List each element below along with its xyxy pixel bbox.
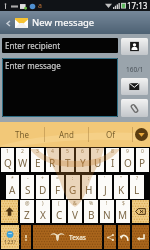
staticText: X [40,208,46,222]
staticText: New message [32,16,95,29]
staticText: 2 [21,148,24,155]
button[interactable]: : [66,175,80,199]
staticText: Enter recipient [5,40,61,51]
staticText: * [11,175,14,182]
button[interactable]: Backspace [132,200,149,223]
button[interactable]: 7 [91,148,104,172]
staticText: Of [106,129,115,140]
button[interactable]: ; [82,175,96,199]
button[interactable]: 3 [31,148,44,172]
staticText: 6 [81,148,84,155]
button[interactable]: And [45,122,88,147]
staticText: ! [106,200,108,207]
button[interactable]: % [84,200,98,223]
button[interactable]: Share [104,225,116,249]
button[interactable]: 8 [106,148,119,172]
button[interactable]: 4 [46,148,59,172]
button[interactable]: Enter message [2,58,118,117]
button[interactable]: Back [2,13,15,33]
staticText: S [25,183,31,197]
staticText: : [72,175,74,182]
staticText: - [27,175,29,182]
button[interactable]: Numbers and symbols [1,225,19,249]
staticText: 8 [111,148,114,155]
button[interactable]: Send [121,78,148,95]
button[interactable]: Shift [1,200,18,223]
button[interactable]: Enter recipient [2,38,118,53]
button[interactable]: The [0,122,44,147]
button[interactable]: $ [116,200,130,223]
staticText: 9 [126,148,129,155]
staticText: N [103,208,111,222]
staticText: H [85,183,93,197]
staticText: % [89,200,94,207]
button[interactable]: 9 [121,148,134,172]
staticText: I [111,156,115,170]
button[interactable]: ? [130,175,144,199]
staticText: K [118,183,125,197]
staticText: E [35,156,41,170]
button[interactable]: ( [52,200,66,223]
button[interactable]: 0 [136,148,149,172]
staticText: ? [136,175,139,182]
button[interactable]: 6 [76,148,89,172]
staticText: + [41,175,44,182]
staticText: L [134,183,140,197]
staticText: Q [4,156,12,170]
staticText: 160/1 [126,65,144,74]
staticText: O [124,156,132,170]
staticText: Z [24,208,30,222]
button[interactable]: & [68,200,82,223]
button[interactable]: * [6,175,19,199]
staticText: " [120,175,123,182]
button[interactable]: ) [36,200,50,223]
button[interactable]: Of [89,122,132,147]
button[interactable]: - [21,175,34,199]
staticText: 0 [141,148,144,155]
staticText: ( [58,200,60,207]
button[interactable]: Exclamation mark [21,225,31,249]
staticText: 5 [66,148,69,155]
staticText: & [73,200,77,207]
staticText: Enter message [5,60,61,71]
staticText: Texas [69,233,86,242]
staticText: M [118,208,128,222]
button[interactable]: + [36,175,49,199]
staticText: J [104,183,107,197]
staticText: W [18,156,28,170]
button[interactable]: Contacts [121,38,148,55]
button[interactable]: ! [100,200,114,223]
staticText: 17:13 [127,0,148,11]
button[interactable]: " [114,175,128,199]
button[interactable]: 1 [1,148,14,172]
button[interactable]: @ [20,200,34,223]
staticText: And [59,129,74,140]
button[interactable]: Attach [121,99,148,117]
staticText: R [49,156,56,170]
staticText: P [139,156,146,170]
button[interactable]: More suggestions [133,122,150,147]
staticText: 123? [4,238,16,245]
staticText: G [69,183,77,197]
button[interactable]: = [51,175,64,199]
button[interactable]: 5 [61,148,74,172]
staticText: T [65,156,71,170]
staticText: F [55,183,61,197]
staticText: The [15,129,29,140]
staticText: $ [122,200,125,207]
button[interactable]: 2 [16,148,29,172]
staticText: D [39,183,47,197]
staticText: = [56,175,59,182]
button[interactable]: ' [98,175,112,199]
staticText: C [56,208,63,222]
staticText: U [94,156,102,170]
staticText: ' [104,175,106,182]
button[interactable]: Undo [118,225,130,249]
button[interactable]: Enter [132,225,149,249]
staticText: ) [42,200,44,207]
staticText: 1 [6,148,9,155]
staticText: Y [80,156,86,170]
button[interactable]: Space [33,225,102,249]
staticText: 3 [36,148,39,155]
staticText: ; [88,175,90,182]
